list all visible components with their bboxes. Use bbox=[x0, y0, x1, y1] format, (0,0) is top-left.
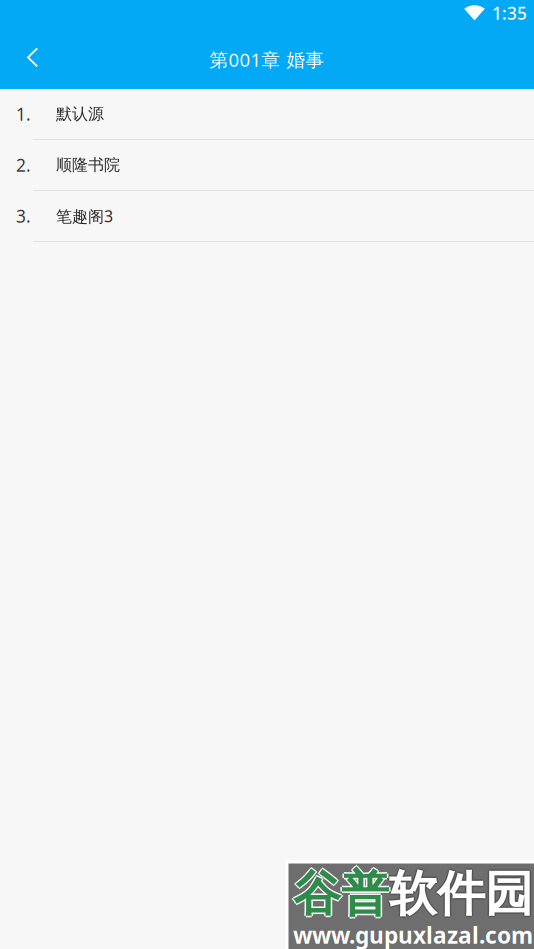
staticText: 默认源 bbox=[56, 104, 104, 124]
staticText: 顺隆书院 bbox=[56, 155, 120, 175]
button[interactable]: 1. bbox=[0, 89, 534, 140]
staticText: 谷普 bbox=[291, 864, 387, 923]
staticText: 软件园 bbox=[389, 864, 533, 923]
button[interactable]: 3. bbox=[0, 191, 534, 242]
staticText: 2. bbox=[16, 153, 31, 176]
staticText: 笔趣阁3 bbox=[56, 205, 113, 227]
button[interactable]: Back bbox=[0, 34, 58, 89]
staticText: 第001章 婚事 bbox=[209, 47, 324, 72]
staticText: 软件园 bbox=[387, 864, 531, 923]
staticText: 软件园 bbox=[389, 866, 533, 925]
staticText: 1:35 bbox=[492, 1, 527, 24]
staticText: 软件园 bbox=[391, 864, 534, 923]
staticText: 谷普 bbox=[295, 864, 391, 923]
button[interactable]: 2. bbox=[0, 140, 534, 191]
staticText: 谷普 bbox=[293, 863, 389, 922]
staticText: 1. bbox=[16, 102, 31, 125]
staticText: 谷普 bbox=[293, 864, 389, 923]
staticText: 3. bbox=[16, 204, 31, 227]
staticText: 谷普 bbox=[293, 866, 389, 925]
staticText: www.gupuxlazal.com bbox=[293, 920, 533, 949]
staticText: 软件园 bbox=[389, 863, 533, 922]
